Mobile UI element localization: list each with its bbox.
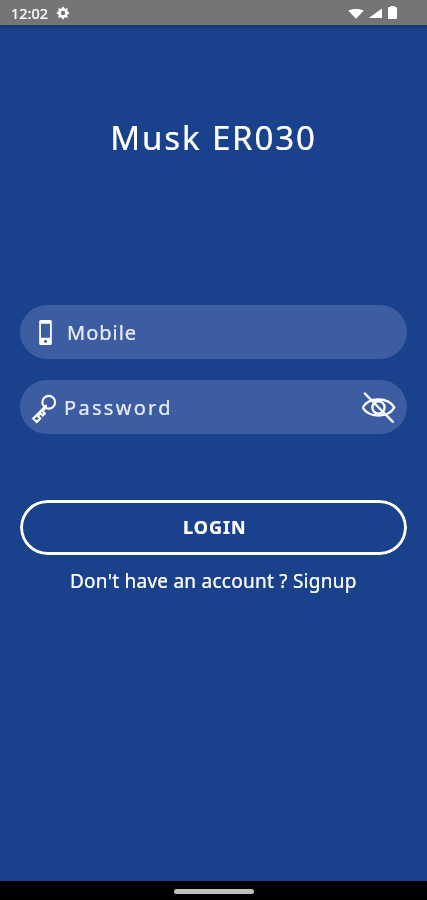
staticText: LOGIN — [183, 515, 247, 540]
button[interactable]: Password — [20, 380, 407, 434]
button[interactable]: Don't have an account ? Signup — [0, 568, 427, 594]
staticText: 12:02 — [11, 3, 49, 23]
button[interactable]: Show password — [354, 383, 402, 431]
staticText: Password — [64, 394, 173, 421]
staticText: Don't have an account ? Signup — [70, 568, 357, 594]
staticText: Mobile — [67, 319, 138, 346]
staticText: Musk ER030 — [0, 115, 427, 160]
button[interactable]: LOGIN — [20, 500, 407, 555]
button[interactable]: Mobile — [20, 305, 407, 359]
